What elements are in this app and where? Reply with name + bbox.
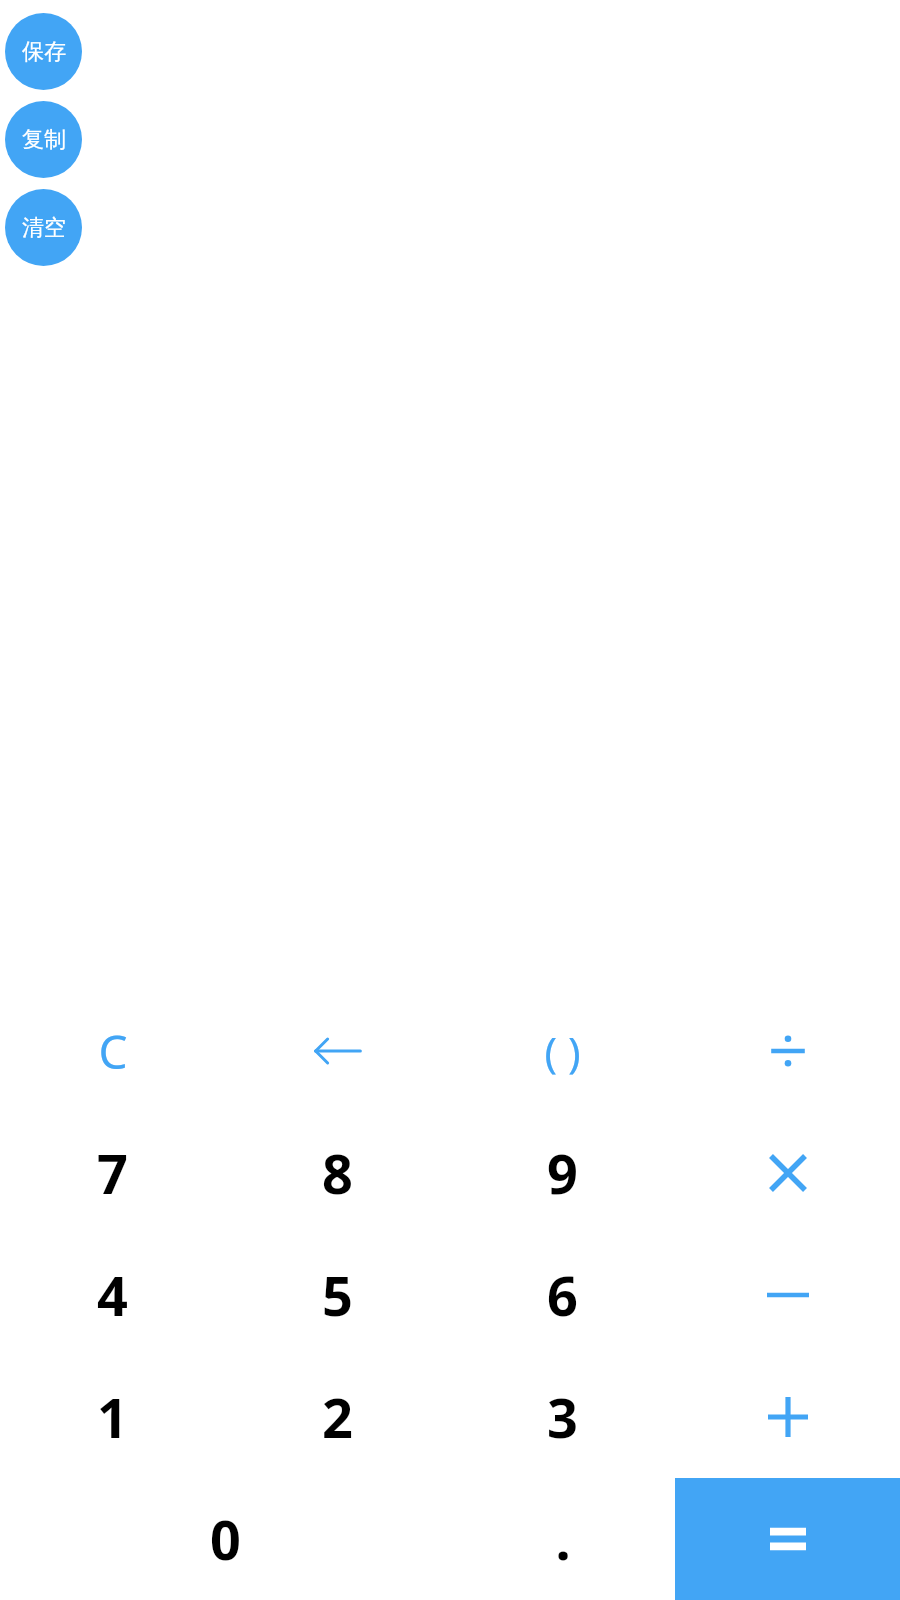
staticText: 9 — [547, 1136, 578, 1210]
button[interactable]: . — [450, 1478, 675, 1600]
staticText: 2 — [322, 1380, 353, 1454]
staticText: 1 — [97, 1380, 128, 1454]
button[interactable]: C — [0, 990, 225, 1112]
button[interactable]: 清空 — [5, 189, 82, 266]
button[interactable]: 复制 — [5, 101, 82, 178]
button[interactable]: 7 — [0, 1112, 225, 1234]
button[interactable]: Plus — [675, 1356, 900, 1478]
button[interactable]: 8 — [225, 1112, 450, 1234]
button[interactable]: 5 — [225, 1234, 450, 1356]
button[interactable]: 3 — [450, 1356, 675, 1478]
button[interactable]: ( ) — [450, 990, 675, 1112]
button[interactable]: 保存 — [5, 13, 82, 90]
staticText: 6 — [547, 1258, 578, 1332]
button[interactable]: Equals — [675, 1478, 900, 1600]
button[interactable]: Multiply — [675, 1112, 900, 1234]
staticText: 保存 — [22, 38, 66, 66]
button[interactable]: Divide — [675, 990, 900, 1112]
button[interactable]: Backspace — [225, 990, 450, 1112]
button[interactable]: 9 — [450, 1112, 675, 1234]
staticText: 3 — [547, 1380, 578, 1454]
button[interactable]: 0 — [0, 1478, 450, 1600]
staticText: 5 — [322, 1258, 353, 1332]
staticText: C — [98, 1020, 128, 1083]
button[interactable]: 2 — [225, 1356, 450, 1478]
button[interactable]: 6 — [450, 1234, 675, 1356]
staticText: 4 — [97, 1258, 128, 1332]
staticText: ( ) — [544, 1023, 581, 1080]
staticText: . — [555, 1502, 571, 1576]
staticText: 7 — [97, 1136, 128, 1210]
staticText: 复制 — [22, 126, 66, 154]
staticText: 清空 — [22, 214, 66, 242]
button[interactable]: 1 — [0, 1356, 225, 1478]
button[interactable]: Minus — [675, 1234, 900, 1356]
staticText: 8 — [322, 1136, 353, 1210]
staticText: 0 — [210, 1502, 241, 1576]
button[interactable]: 4 — [0, 1234, 225, 1356]
